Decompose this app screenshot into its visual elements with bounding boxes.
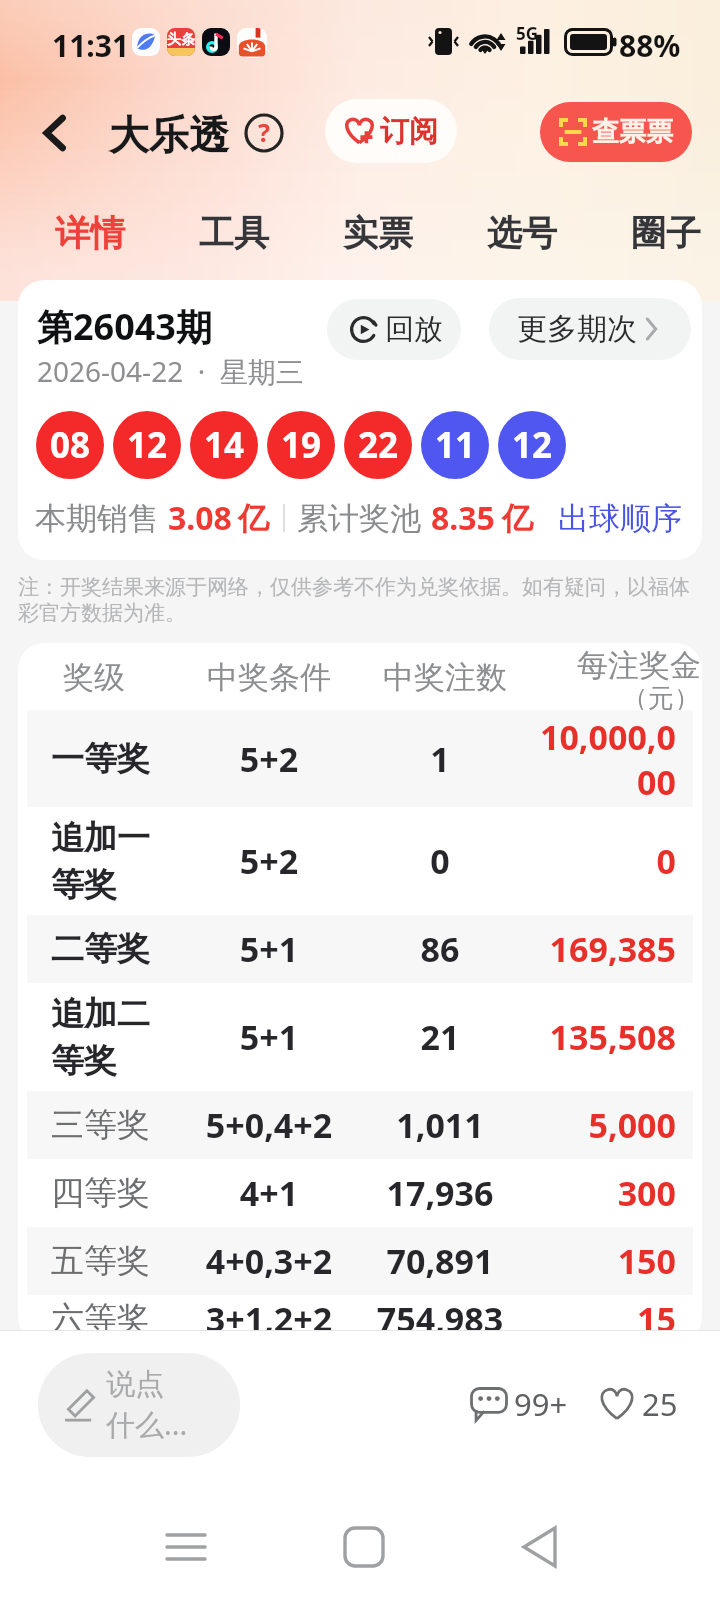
- staticText: 17,936: [354, 1170, 526, 1216]
- staticText: 754,983: [354, 1296, 526, 1342]
- staticText: 累计奖池: [297, 499, 421, 538]
- button[interactable]: 更多期次: [489, 298, 691, 360]
- staticText: 8.35: [431, 496, 495, 540]
- staticText: 第26043期: [37, 302, 212, 351]
- staticText: 1: [354, 736, 526, 782]
- button[interactable]: 说点 什么...: [38, 1353, 240, 1457]
- staticText: 详情: [55, 211, 125, 255]
- staticText: 0: [354, 838, 526, 884]
- button[interactable]: Comments: [470, 1383, 568, 1425]
- staticText: 70,891: [354, 1238, 526, 1284]
- staticText: 订阅: [380, 113, 438, 150]
- button[interactable]: 选号: [470, 196, 574, 270]
- button[interactable]: 工具: [182, 196, 286, 270]
- staticText: 11:31: [52, 25, 130, 66]
- staticText: 10,000,000: [531, 714, 676, 804]
- staticText: 99+: [514, 1383, 568, 1425]
- staticText: 中奖注数: [383, 658, 507, 697]
- button[interactable]: Like: [598, 1383, 678, 1425]
- button[interactable]: 实票: [326, 196, 430, 270]
- staticText: 追加二等奖: [51, 993, 155, 1082]
- staticText: 奖级: [63, 658, 125, 697]
- staticText: 2026-04-22 · 星期三: [37, 352, 304, 390]
- staticText: 0: [531, 838, 676, 884]
- staticText: ?: [258, 115, 270, 149]
- staticText: 5G: [516, 22, 539, 45]
- staticText: 说点 什么...: [106, 1366, 188, 1444]
- staticText: 3.08: [168, 496, 232, 540]
- staticText: 5+1: [184, 1014, 354, 1060]
- staticText: 08: [50, 421, 91, 469]
- staticText: 22: [358, 421, 399, 469]
- staticText: 11: [435, 421, 476, 469]
- staticText: 回放: [385, 311, 443, 348]
- staticText: 4+1: [184, 1170, 354, 1216]
- staticText: 1,011: [354, 1102, 526, 1148]
- staticText: 二等奖: [51, 928, 155, 970]
- staticText: 本期销售: [35, 499, 159, 538]
- button[interactable]: 详情: [38, 196, 142, 270]
- staticText: 五等奖: [51, 1240, 155, 1282]
- staticText: 选号: [487, 211, 557, 255]
- button[interactable]: 回放: [327, 299, 461, 360]
- staticText: 19: [281, 421, 322, 469]
- staticText: 注：开奖结果来源于网络，仅供参考不作为兑奖依据。如有疑问，以福体 彩官方数据为准…: [18, 574, 718, 626]
- staticText: 4+0,3+2: [184, 1238, 354, 1284]
- button[interactable]: 四等奖: [27, 1159, 693, 1227]
- staticText: 15: [531, 1296, 676, 1342]
- staticText: 5+0,4+2: [184, 1102, 354, 1148]
- staticText: 实票: [343, 211, 413, 255]
- staticText: 圈子: [631, 211, 701, 255]
- staticText: 169,385: [531, 926, 676, 972]
- staticText: 12: [512, 421, 553, 469]
- staticText: 一等奖: [51, 738, 155, 780]
- button[interactable]: 出球顺序: [558, 499, 682, 538]
- staticText: 12: [127, 421, 168, 469]
- button[interactable]: 六等奖: [27, 1295, 693, 1343]
- staticText: 86: [354, 926, 526, 972]
- button[interactable]: 二等奖: [27, 915, 693, 983]
- staticText: 三等奖: [51, 1104, 155, 1146]
- staticText: 3+1,2+2: [184, 1296, 354, 1342]
- staticText: 300: [531, 1170, 676, 1216]
- staticText: 六等奖: [51, 1298, 155, 1340]
- button[interactable]: 订阅: [325, 99, 457, 163]
- staticText: 21: [354, 1014, 526, 1060]
- staticText: 88%: [619, 25, 681, 66]
- staticText: 每注奖金: [577, 646, 701, 685]
- staticText: 查票票: [592, 115, 673, 149]
- button[interactable]: 圈子: [614, 196, 718, 270]
- button[interactable]: Help: [243, 112, 285, 154]
- staticText: 5,000: [531, 1102, 676, 1148]
- staticText: 工具: [199, 211, 269, 255]
- button[interactable]: 追加一等奖: [27, 807, 693, 915]
- staticText: 5+1: [184, 926, 354, 972]
- staticText: 大乐透: [109, 110, 229, 160]
- button[interactable]: 三等奖: [27, 1091, 693, 1159]
- staticText: 四等奖: [51, 1172, 155, 1214]
- staticText: 135,508: [531, 1014, 676, 1060]
- staticText: 更多期次: [517, 310, 637, 348]
- staticText: 亿: [238, 499, 269, 538]
- button[interactable]: 追加二等奖: [27, 983, 693, 1091]
- staticText: 5+2: [184, 736, 354, 782]
- button[interactable]: 查票票: [540, 102, 692, 162]
- button[interactable]: 五等奖: [27, 1227, 693, 1295]
- staticText: 5+2: [184, 838, 354, 884]
- button[interactable]: 一等奖: [27, 710, 693, 807]
- staticText: 150: [531, 1238, 676, 1284]
- staticText: 中奖条件: [207, 658, 331, 697]
- staticText: 亿: [502, 499, 533, 538]
- staticText: 头条: [167, 31, 195, 49]
- button[interactable]: Back: [27, 105, 83, 161]
- staticText: （元）: [622, 682, 700, 715]
- staticText: 14: [204, 421, 245, 469]
- staticText: 25: [642, 1383, 678, 1425]
- staticText: 追加一等奖: [51, 817, 155, 906]
